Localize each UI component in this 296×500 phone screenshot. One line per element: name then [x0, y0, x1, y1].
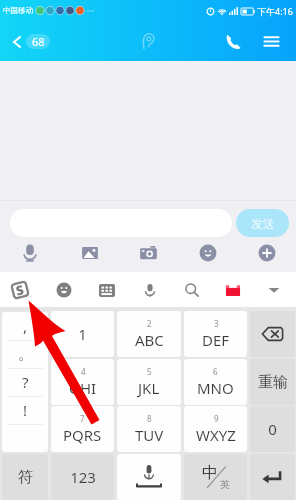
staticText: 1	[78, 324, 87, 344]
button[interactable]: key	[250, 406, 295, 452]
button[interactable]: Keyboard	[95, 278, 119, 302]
staticText: 2	[147, 318, 152, 329]
button[interactable]: key	[250, 359, 295, 405]
button[interactable]: Photo	[60, 239, 119, 267]
staticText: 。	[18, 345, 33, 364]
button[interactable]: key	[184, 406, 247, 452]
staticText: 123	[70, 467, 96, 487]
button[interactable]: Call	[220, 28, 246, 54]
button[interactable]: key	[250, 454, 295, 500]
button[interactable]: Back	[10, 34, 50, 49]
staticText: 符	[18, 468, 33, 487]
button[interactable]: symbol key	[2, 312, 48, 340]
staticText: 英	[220, 478, 230, 491]
staticText: PQRS	[63, 425, 102, 445]
staticText: 下午4:16	[257, 5, 293, 17]
button[interactable]: key	[117, 311, 181, 357]
staticText: ABC	[135, 330, 164, 350]
button[interactable]: 发送	[236, 209, 289, 237]
staticText: S	[14, 280, 26, 300]
button[interactable]: key	[51, 311, 114, 357]
button[interactable]: key	[2, 454, 48, 500]
staticText: ,	[23, 316, 28, 336]
button[interactable]: More	[237, 239, 296, 267]
staticText: 发送	[251, 216, 275, 231]
staticText: 0	[268, 419, 277, 439]
button[interactable]: Search	[180, 278, 204, 302]
staticText: 中国移动	[3, 6, 33, 15]
button[interactable]: symbol key	[2, 340, 48, 368]
staticText: WXYZ	[196, 425, 236, 445]
button[interactable]: symbol key	[2, 396, 48, 424]
button[interactable]: key	[51, 359, 114, 405]
staticText: 中	[202, 463, 218, 483]
staticText: DEF	[202, 330, 230, 350]
button[interactable]: Emoji	[52, 278, 76, 302]
button[interactable]: key	[117, 454, 181, 500]
button[interactable]: key	[117, 359, 181, 405]
staticText: 8	[147, 413, 152, 424]
button[interactable]: Listen	[135, 28, 161, 54]
staticText: 68	[32, 34, 45, 49]
button[interactable]: key	[184, 311, 247, 357]
staticText: MNO	[197, 378, 234, 398]
staticText: TUV	[135, 425, 164, 445]
button[interactable]: Voice input	[138, 278, 162, 302]
button[interactable]: key	[184, 454, 247, 500]
staticText: !	[23, 400, 28, 420]
button[interactable]: key	[51, 454, 114, 500]
button[interactable]: key	[51, 406, 114, 452]
staticText: 5	[147, 366, 152, 377]
button[interactable]: Voice	[0, 239, 60, 267]
staticText: JKL	[138, 378, 160, 398]
button[interactable]: key	[184, 359, 247, 405]
button[interactable]: Sogou	[8, 278, 32, 302]
button[interactable]: symbol key	[2, 368, 48, 396]
staticText: 6	[213, 366, 218, 377]
staticText: GHI	[69, 378, 97, 398]
button[interactable]: Emoji	[178, 239, 237, 267]
button[interactable]: key	[117, 406, 181, 452]
staticText: 重输	[258, 373, 288, 392]
staticText: 4	[81, 366, 86, 377]
button[interactable]: Gift	[221, 278, 245, 302]
staticText: 3	[214, 318, 219, 329]
button[interactable]: Menu	[258, 28, 284, 54]
staticText: 9	[214, 413, 219, 424]
button[interactable]: More	[262, 278, 286, 302]
button[interactable]: key	[250, 311, 295, 357]
staticText: 7	[80, 413, 85, 424]
staticText: ?	[22, 372, 29, 392]
button[interactable]: Camera	[119, 239, 178, 267]
